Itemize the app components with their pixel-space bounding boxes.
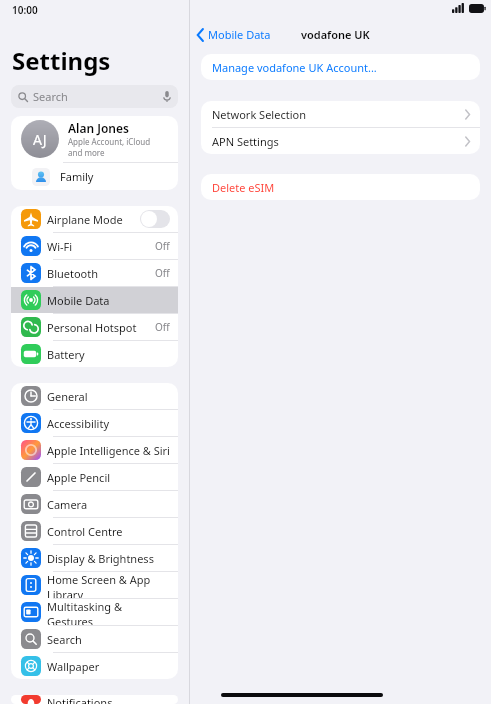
staticText: Off [155,266,170,280]
button[interactable]: Wallpaper [11,653,178,679]
staticText: Control Centre [47,524,123,539]
staticText: vodafone UK [301,27,370,42]
staticText: Apple Pencil [47,470,111,485]
staticText: Manage vodafone UK Account... [212,60,377,75]
staticText: Apple Intelligence & Siri [47,443,170,458]
staticText: Settings [12,44,111,77]
staticText: Delete eSIM [212,180,275,195]
button[interactable]: Delete eSIM [201,174,480,200]
staticText: APN Settings [212,134,279,149]
staticText: Bluetooth [47,266,99,281]
button[interactable]: AJ [11,116,178,162]
button[interactable]: Multitasking & Gestures [11,599,178,625]
staticText: 10:00 [12,3,38,17]
staticText: Camera [47,497,88,512]
button[interactable]: Bluetooth [11,260,178,286]
button[interactable]: Airplane Mode [11,206,178,232]
staticText: Mobile Data [208,27,271,42]
button[interactable]: Apple Pencil [11,464,178,490]
button[interactable]: APN Settings [201,128,480,154]
button[interactable]: General [11,383,178,409]
staticText: Off [155,239,170,253]
button[interactable]: Network Selection [201,101,480,127]
button[interactable]: Search [11,626,178,652]
staticText: Accessibility [47,416,110,431]
button[interactable]: Mobile Data [190,23,279,46]
button[interactable]: Manage vodafone UK Account... [201,54,480,80]
button[interactable]: Search [11,85,178,108]
staticText: Notifications [47,695,113,704]
staticText: Network Selection [212,107,306,122]
button[interactable]: Personal Hotspot [11,314,178,340]
staticText: Wi-Fi [47,239,73,254]
staticText: Off [155,320,170,334]
button[interactable]: Mobile Data [11,287,178,313]
staticText: Battery [47,347,85,362]
staticText: Wallpaper [47,659,100,674]
button[interactable]: Apple Intelligence & Siri [11,437,178,463]
staticText: Display & Brightness [47,551,154,566]
button[interactable]: Family [11,163,178,190]
button[interactable]: Battery [11,341,178,367]
staticText: Multitasking & Gestures [47,599,170,625]
staticText: Mobile Data [47,293,110,308]
staticText: General [47,389,88,404]
staticText: Personal Hotspot [47,320,137,335]
button[interactable]: Control Centre [11,518,178,544]
staticText: Apple Account, iCloud [68,136,151,147]
staticText: and more [68,147,105,158]
button[interactable]: Airplane Mode toggle [140,210,170,228]
button[interactable]: Camera [11,491,178,517]
staticText: Home Screen & App Library [47,572,170,598]
staticText: Airplane Mode [47,212,123,227]
button[interactable]: Wi-Fi [11,233,178,259]
staticText: Search [33,89,68,104]
button[interactable]: Home Screen & App Library [11,572,178,598]
staticText: AJ [33,130,47,149]
staticText: Family [60,169,94,184]
button[interactable]: Display & Brightness [11,545,178,571]
staticText: Alan Jones [68,120,129,136]
button[interactable]: Accessibility [11,410,178,436]
button[interactable]: Notifications [11,695,178,704]
staticText: Search [47,632,82,647]
